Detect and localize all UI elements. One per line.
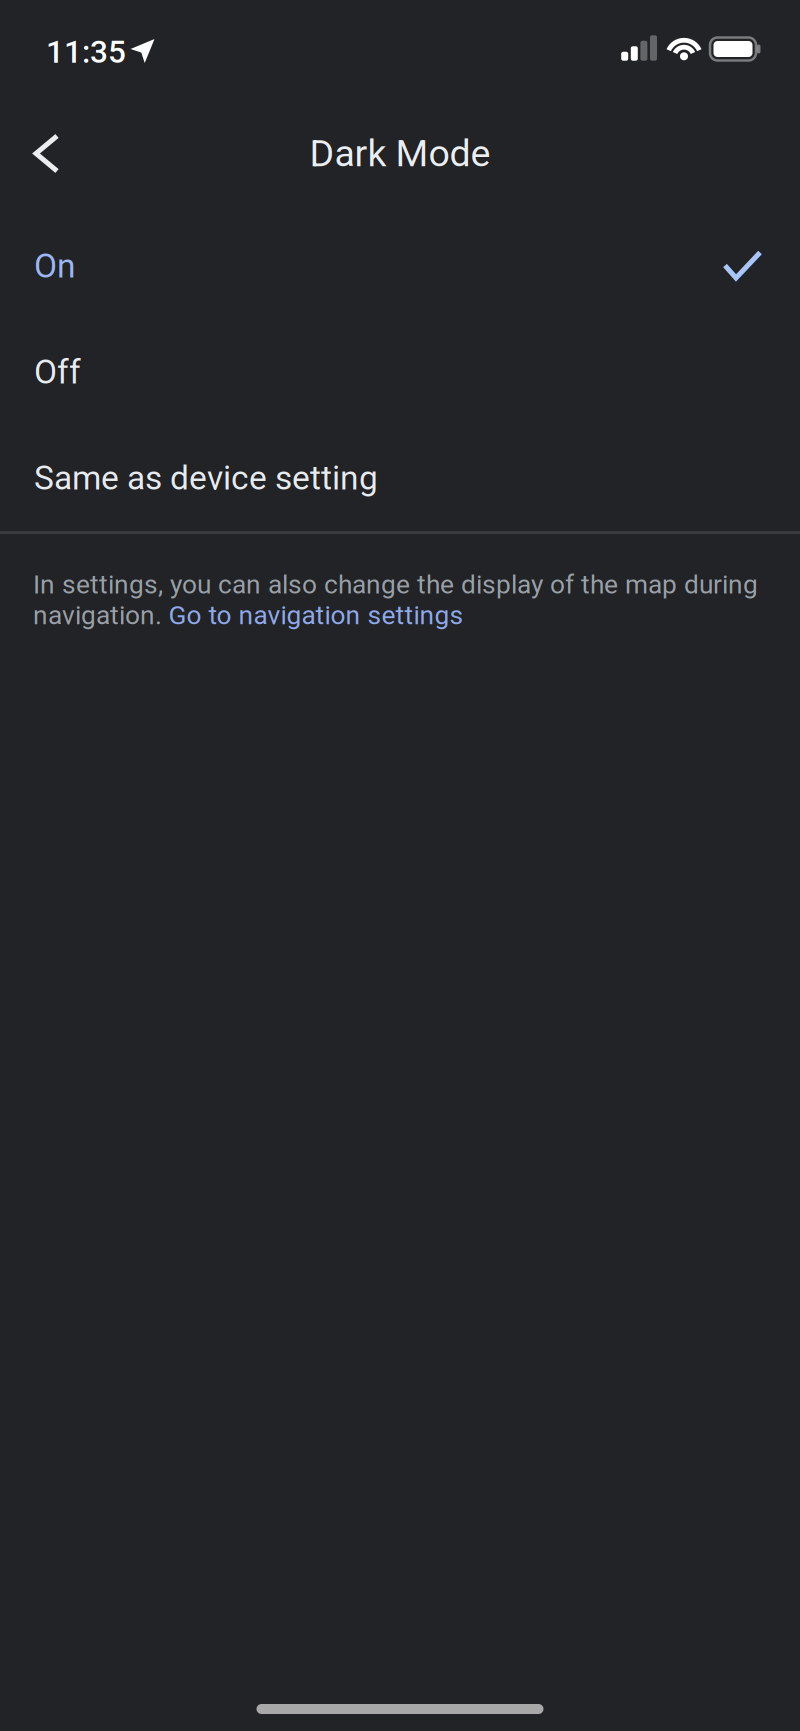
button[interactable]: Off xyxy=(0,319,800,425)
button[interactable]: Back xyxy=(0,126,77,181)
button[interactable]: On xyxy=(0,213,800,319)
staticText: In settings, you can also change the dis… xyxy=(33,569,758,600)
staticText: navigation. xyxy=(33,600,162,631)
staticText: Go to navigation settings xyxy=(168,600,463,631)
button[interactable]: Same as device setting xyxy=(0,425,800,531)
staticText: On xyxy=(34,246,76,286)
staticText: Off xyxy=(34,352,81,392)
staticText: Dark Mode xyxy=(309,131,490,175)
staticText: Same as device setting xyxy=(34,458,378,498)
staticText: 11:35 xyxy=(46,33,126,70)
button[interactable]: Go to navigation settings xyxy=(168,600,463,631)
